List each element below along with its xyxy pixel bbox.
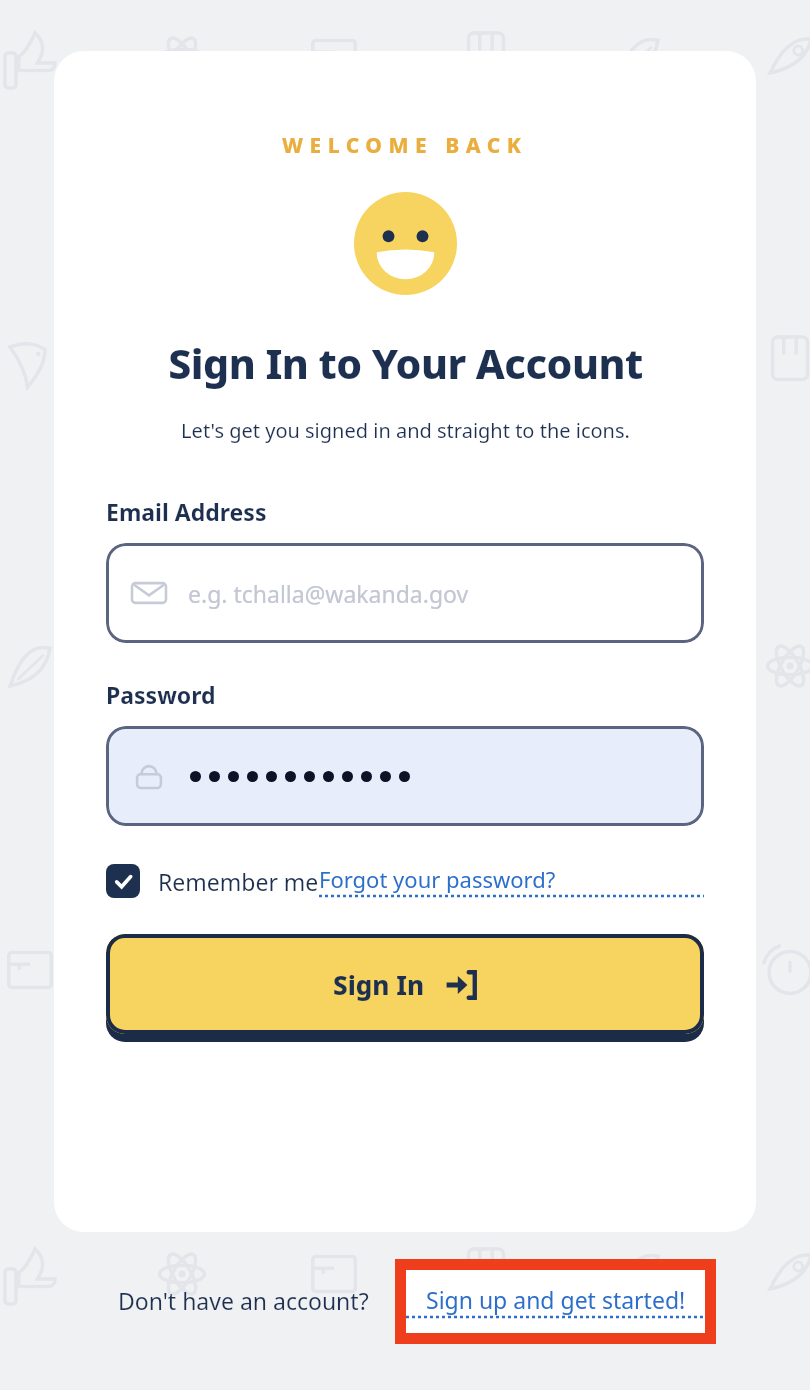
button[interactable]: Email address input [106,543,704,643]
staticText: Sign up and get started! [426,1284,686,1315]
staticText: Let's get you signed in and straight to … [181,417,630,444]
button[interactable]: Sign In [106,934,704,1042]
button[interactable]: Forgot your password? [319,864,704,898]
staticText: WELCOME BACK [282,131,528,160]
button[interactable]: Remember me [106,864,319,898]
staticText: e.g. tchalla@wakanda.gov [188,578,469,609]
staticText: Password [106,679,216,710]
staticText: Sign In to Your Account [168,335,643,391]
staticText: Remember me [158,866,319,897]
staticText: Sign In [333,967,425,1002]
staticText: Email Address [106,496,267,527]
button[interactable]: Password input [106,726,704,826]
staticText: Don't have an account? [118,1285,369,1316]
staticText: Forgot your password? [319,864,556,894]
button[interactable]: Sign up and get started! [406,1270,705,1333]
